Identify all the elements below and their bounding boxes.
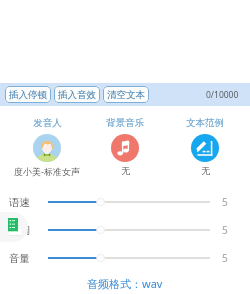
staticText: 无 (121, 165, 130, 176)
staticText: 无 (201, 165, 210, 176)
staticText: 5 (222, 251, 228, 265)
staticText: 文本范例 (186, 117, 224, 129)
staticText: 度小美-标准女声 (14, 165, 80, 177)
staticText: 音量 (9, 252, 30, 265)
staticText: 插入停顿 (9, 89, 47, 101)
button[interactable]: Floating shortcut (0, 212, 28, 242)
button[interactable]: 插入音效 (54, 86, 100, 103)
staticText: 5 (222, 195, 228, 209)
staticText: 音频格式：wav (87, 276, 163, 291)
staticText: 语速 (9, 196, 30, 209)
button[interactable]: 背景音乐 (83, 117, 167, 181)
button[interactable]: 清空文本 (103, 86, 149, 103)
staticText: 0/10000 (206, 89, 239, 101)
button[interactable]: 文本范例 (163, 117, 247, 181)
staticText: 5 (222, 223, 228, 237)
staticText: 发音人 (33, 117, 62, 129)
button[interactable]: 发音人 (5, 117, 89, 181)
staticText: 清空文本 (107, 89, 145, 101)
staticText: 插入音效 (58, 89, 96, 101)
staticText: 背景音乐 (106, 117, 144, 129)
button[interactable]: 插入停顿 (5, 86, 51, 103)
button[interactable]: 音量 (0, 248, 250, 268)
button[interactable]: 语速 (0, 192, 250, 212)
staticText: 语调 (9, 224, 30, 237)
button[interactable]: 语调 (0, 220, 250, 240)
